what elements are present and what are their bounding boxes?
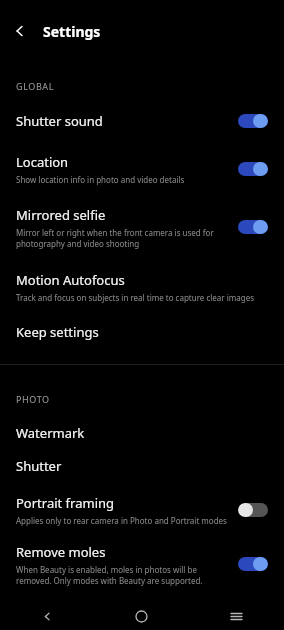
staticText: Keep settings [16, 323, 99, 341]
staticText: Enhanced Night Sky [16, 602, 138, 620]
staticText: Settings [43, 22, 101, 41]
staticText: Shutter [16, 457, 62, 475]
staticText: Shutter sound [16, 112, 103, 130]
button[interactable]: Back [0, 11, 40, 51]
staticText: When Beauty is enabled, moles in photos … [16, 564, 230, 586]
button[interactable]: Toggle on [238, 557, 268, 571]
staticText: PHOTO [16, 393, 50, 405]
staticText: Show location info in photo and video de… [16, 174, 185, 185]
staticText: GLOBAL [16, 80, 55, 92]
button[interactable]: Recent apps [189, 602, 284, 630]
button[interactable]: Portrait framing [0, 490, 284, 530]
button[interactable]: Shutter sound [0, 106, 284, 136]
button[interactable]: Watermark [0, 419, 284, 447]
button[interactable]: Toggle off [238, 503, 268, 517]
button[interactable]: Motion Autofocus [0, 261, 284, 313]
button[interactable]: Toggle on [238, 114, 268, 128]
staticText: Watermark [16, 424, 85, 442]
button[interactable]: Toggle on [238, 604, 268, 618]
button[interactable]: Remove moles [0, 538, 284, 590]
staticText: Applies only to rear camera in Photo and… [16, 515, 227, 526]
button[interactable]: Mirrored selfie [0, 201, 284, 253]
staticText: Location [16, 153, 69, 171]
button[interactable]: Back [0, 602, 94, 630]
button[interactable]: Toggle on [238, 162, 268, 176]
staticText: Motion Autofocus [16, 271, 125, 289]
staticText: Track and focus on subjects in real time… [16, 292, 254, 303]
button[interactable]: Home [94, 602, 189, 630]
staticText: Mirrored selfie [16, 206, 106, 224]
staticText: Remove moles [16, 543, 106, 561]
staticText: Portrait framing [16, 494, 115, 512]
button[interactable]: Shutter [0, 452, 284, 480]
staticText: Mirror left or right when the front came… [16, 227, 230, 249]
button[interactable]: Location [0, 149, 284, 189]
button[interactable]: Toggle on [238, 220, 268, 234]
button[interactable]: Enhanced Night Sky [0, 596, 284, 626]
button[interactable]: Keep settings [0, 317, 284, 347]
